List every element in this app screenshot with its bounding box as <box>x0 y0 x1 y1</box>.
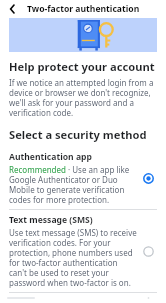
staticText: Recommended · Use an app like Google Aut… <box>9 164 137 205</box>
staticText: If we notice an attempted login from a d… <box>9 77 157 118</box>
button[interactable]: Back <box>4 1 20 17</box>
button[interactable]: Authentication app <box>9 147 157 209</box>
staticText: Text message (SMS) <box>9 214 93 226</box>
staticText: Two-factor authentication <box>27 3 140 15</box>
staticText: Security key <box>9 297 62 299</box>
staticText: Help protect your account <box>9 59 155 74</box>
button[interactable]: Security key <box>9 293 157 303</box>
staticText: Select a security method <box>9 127 147 142</box>
staticText: Use text message (SMS) to receive verifi… <box>9 227 137 288</box>
button[interactable]: Text message (SMS) <box>9 210 157 292</box>
staticText: Authentication app <box>9 151 92 163</box>
